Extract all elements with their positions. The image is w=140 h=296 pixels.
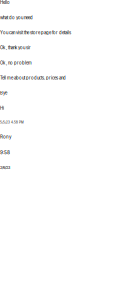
staticText: what do you need: [0, 15, 33, 20]
staticText: 5/5/23 4:58 PM: [0, 121, 24, 124]
staticText: 9:58: [0, 150, 10, 155]
staticText: Bye: [0, 90, 7, 96]
staticText: Rony: [0, 134, 12, 140]
staticText: Tell me about products, prices and: [0, 75, 66, 80]
staticText: Hi: [0, 106, 4, 111]
staticText: 2/6/23: [0, 165, 10, 170]
staticText: Hello: [0, 0, 10, 5]
staticText: Ok , no problem: [0, 60, 32, 65]
staticText: You can visit the store page for details: [0, 30, 71, 35]
staticText: Ok , thank you sir: [0, 45, 31, 50]
